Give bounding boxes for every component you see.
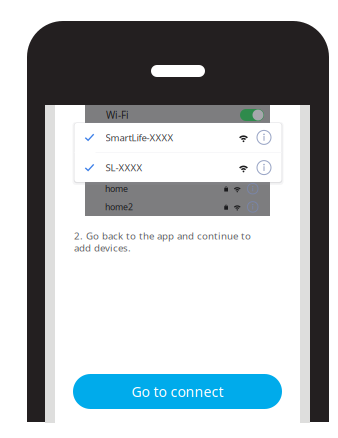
- staticText: home2: [105, 201, 133, 213]
- staticText: 2. Go back to the app and continue to: [74, 229, 251, 242]
- staticText: add devices.: [74, 241, 131, 254]
- button[interactable]: SL-XXXX: [74, 153, 281, 182]
- staticText: SmartLife-XXXX: [105, 131, 173, 144]
- button[interactable]: Go to connect: [73, 374, 282, 409]
- staticText: home: [105, 183, 128, 195]
- button[interactable]: SmartLife-XXXX: [74, 123, 281, 152]
- staticText: Go to connect: [131, 382, 223, 401]
- staticText: SL-XXXX: [105, 161, 142, 174]
- staticText: Wi-Fi: [106, 108, 129, 122]
